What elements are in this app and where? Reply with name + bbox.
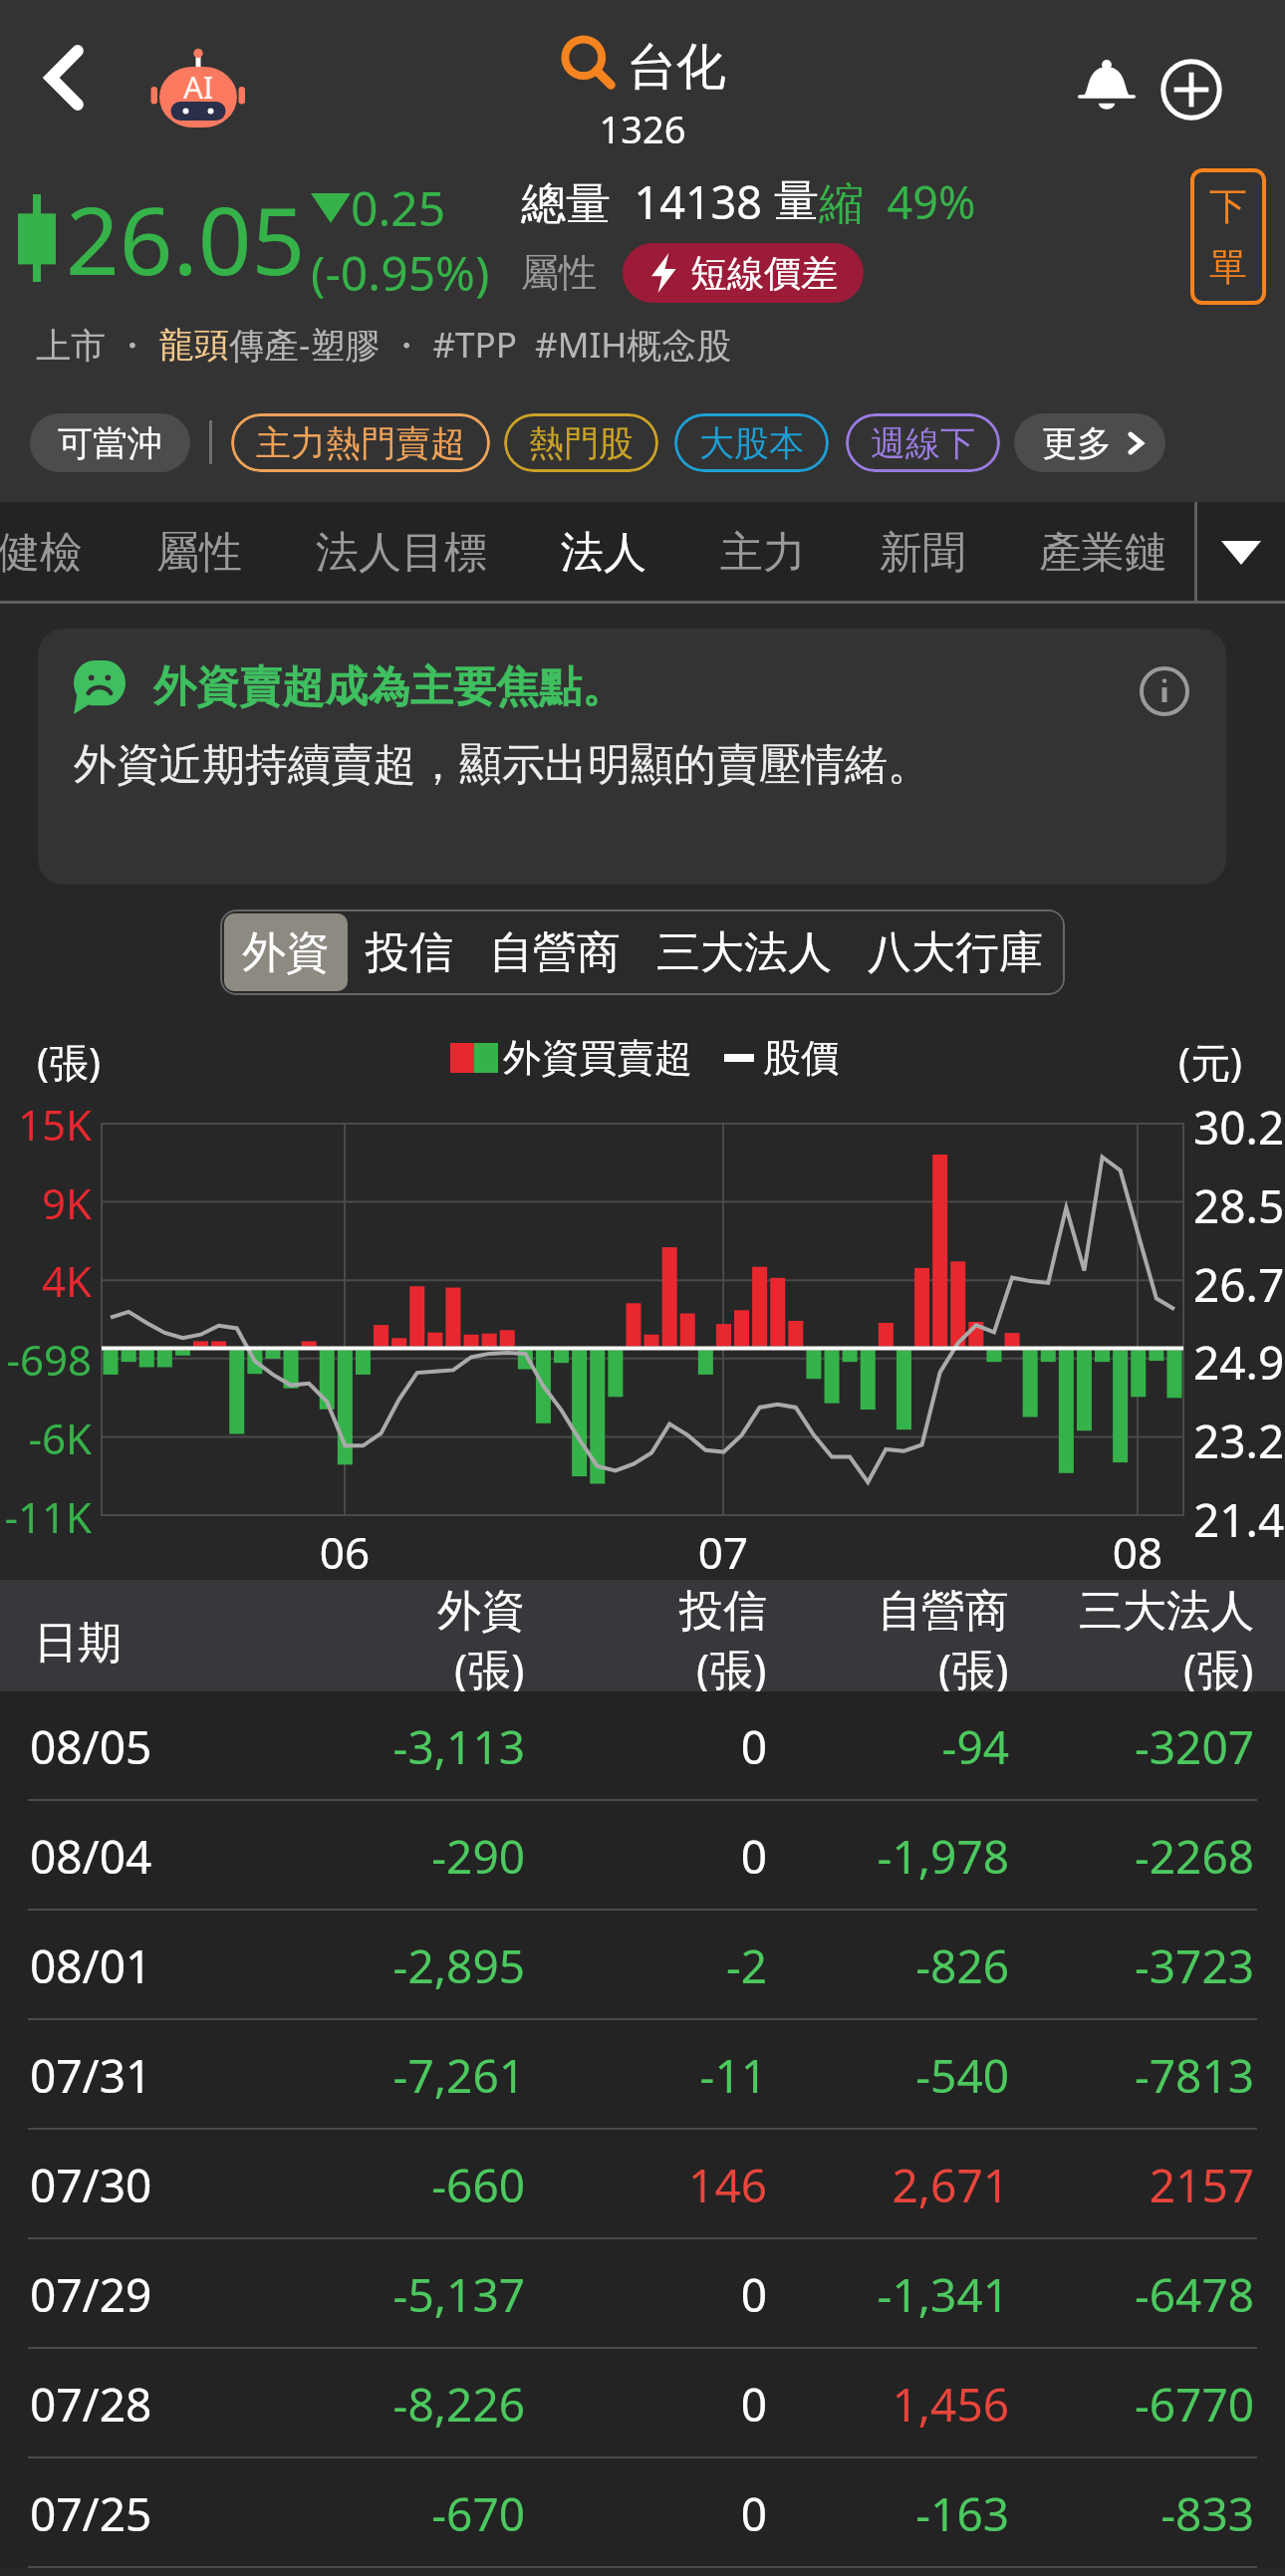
staticText: 總量 14138 [521,171,774,232]
staticText: 24.9 [1193,1331,1285,1394]
staticText: 外資近期持續賣超，顯示出明顯的賣壓情緒。 [74,738,930,792]
staticText: -5,137 [226,2263,525,2326]
button[interactable]: 自營商 [471,913,639,991]
button[interactable]: 08/05 [0,1691,1285,1801]
button[interactable]: 07/25 [0,2458,1285,2568]
staticText: -2268 [955,1825,1254,1888]
staticText: 外資賣超成為主要焦點。 [153,660,625,714]
staticText: 自營商 [489,925,621,980]
button[interactable]: 八大行庫 [850,913,1061,991]
button[interactable]: 短線價差 [623,243,864,303]
button[interactable]: 屬性 [120,502,279,604]
staticText: 週線下 [871,421,975,465]
staticText: 0 [468,2373,767,2436]
staticText: 9K [0,1174,92,1231]
button[interactable]: 熱門股 [504,413,658,472]
staticText: (張) [37,1034,101,1089]
staticText: 屬性 [521,249,597,297]
button[interactable]: 法人 [524,502,683,604]
staticText: 0 [468,2263,767,2326]
button[interactable]: 外資 [224,913,348,991]
button[interactable]: 07/30 [0,2130,1285,2239]
button[interactable]: 可當沖 [30,413,190,472]
staticText: 26.7 [1193,1253,1285,1316]
button[interactable]: 法人目標 [279,502,524,604]
staticText: 大股本 [699,421,804,465]
button[interactable]: 大股本 [674,413,829,472]
staticText: -11K [0,1488,92,1545]
button[interactable]: 主力 [683,502,843,604]
staticText: -3723 [955,1934,1254,1997]
staticText: 主力熱門賣超 [256,421,465,465]
staticText: (張) [454,1639,525,1695]
staticText: 0.25 [351,175,446,240]
button[interactable]: 08/04 [0,1801,1285,1911]
button[interactable]: Notifications [1057,40,1156,139]
staticText: -94 [710,1715,1009,1778]
staticText: 08/04 [30,1825,152,1888]
button[interactable]: 07/28 [0,2349,1285,2458]
staticText: -698 [0,1331,92,1388]
staticText: 146 [468,2154,767,2216]
staticText: (張) [696,1639,767,1695]
staticText: 量 [774,173,819,230]
button[interactable]: Info [1138,664,1191,718]
staticText: 新聞 [880,526,965,580]
staticText: 台化 [627,36,726,99]
staticText: 07/30 [30,2154,152,2216]
staticText: 2,671 [710,2154,1009,2216]
staticText: -826 [710,1934,1009,1997]
button[interactable]: 三大法人 [639,913,850,991]
button[interactable]: 健檢 [0,502,120,604]
staticText: -660 [226,2154,525,2216]
button[interactable]: 產業鏈 [1002,502,1204,604]
staticText: 可當沖 [58,421,162,465]
staticText: 07/25 [30,2482,152,2545]
staticText: 30.2 [1193,1096,1285,1159]
staticText: -8,226 [226,2373,525,2436]
staticText: -6478 [955,2263,1254,2326]
staticText: 三大法人 [656,925,832,980]
staticText: -1,341 [710,2263,1009,2326]
button[interactable]: 外資賣超成為主要焦點。 [38,629,1226,885]
button[interactable]: 新聞 [843,502,1002,604]
button[interactable]: 07/29 [0,2239,1285,2349]
staticText: 1326 [0,103,1285,154]
staticText: 0 [468,2482,767,2545]
staticText: -2 [468,1934,767,1997]
button[interactable]: 下 單 [1190,168,1266,305]
staticText: -11 [468,2044,767,2107]
staticText: 0 [468,1715,767,1778]
button[interactable]: 08/01 [0,1911,1285,2020]
button[interactable]: More tabs [1197,502,1285,604]
staticText: 26.05 [66,175,306,303]
staticText: 下 單 [1209,182,1247,292]
staticText: 07 [693,1522,753,1582]
staticText: 產業鏈 [1039,526,1167,580]
staticText: -833 [955,2482,1254,2545]
staticText: -2,895 [226,1934,525,1997]
button[interactable]: Add to watchlist [1142,40,1241,139]
staticText: (張) [938,1639,1009,1695]
button[interactable]: 07/31 [0,2020,1285,2130]
staticText: (張) [1183,1639,1254,1695]
button[interactable]: 投信 [348,913,471,991]
staticText: 傳產-塑膠 ・ #TPP #MIH概念股 [229,321,732,369]
staticText: -670 [226,2482,525,2545]
staticText: 0 [468,1825,767,1888]
staticText: 更多 [1042,421,1112,465]
staticText: 2157 [955,2154,1254,2216]
staticText: 15K [0,1096,92,1153]
button[interactable]: 週線下 [846,413,1000,472]
button[interactable]: AI assistant [148,34,248,133]
button[interactable]: Back [10,18,120,137]
button[interactable]: 主力熱門賣超 [231,413,490,472]
staticText: (-0.95%) [311,240,490,305]
staticText: 07/31 [30,2044,152,2107]
staticText: AI [183,66,214,108]
staticText: 八大行庫 [868,925,1043,980]
staticText: 07/29 [30,2263,152,2326]
button[interactable]: 更多 [1014,413,1165,472]
staticText: 外資買賣超 [503,1034,692,1082]
staticText: -1,978 [710,1825,1009,1888]
